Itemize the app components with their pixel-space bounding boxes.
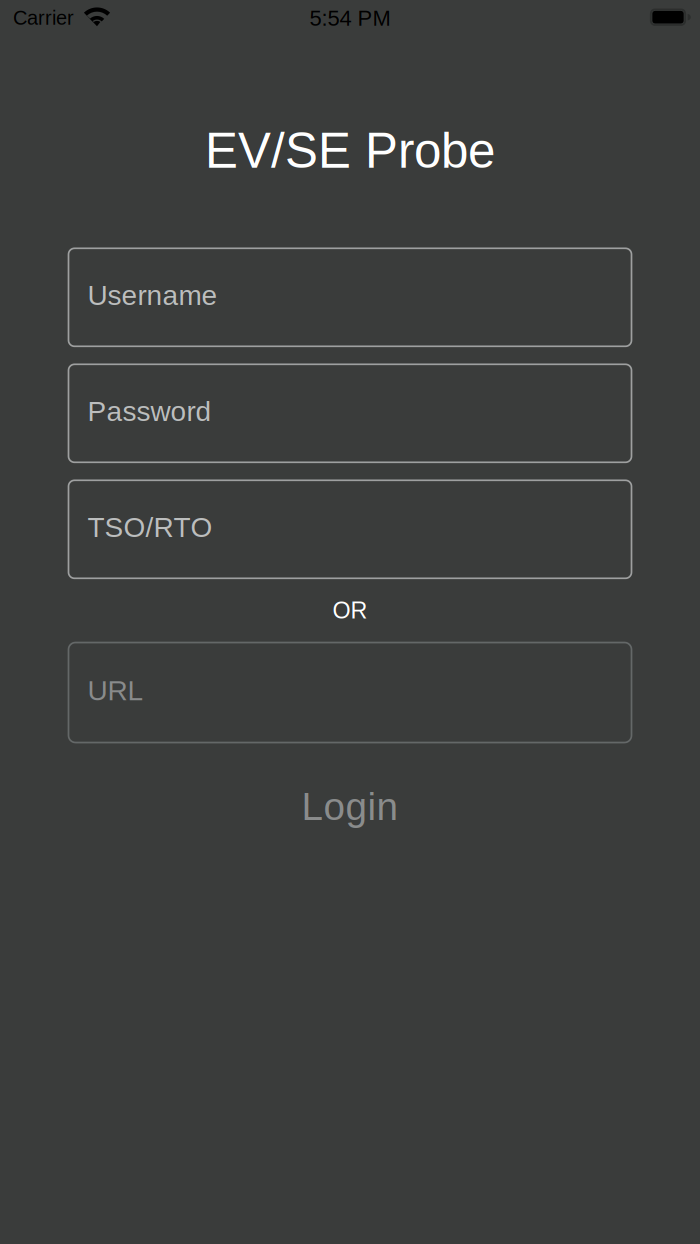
staticText: TSO/RTO [87,512,212,543]
staticText: Password [87,396,211,427]
button[interactable]: TSO/RTO [68,480,631,578]
staticText: EV/SE Probe [205,123,495,178]
staticText: Username [87,280,217,311]
button[interactable]: URL [68,642,631,742]
staticText: 5:54 PM [309,6,390,30]
staticText: Login [301,785,398,828]
button[interactable]: Username [68,248,631,346]
staticText: URL [87,675,143,706]
button[interactable]: Password [68,364,631,462]
button[interactable]: Login [68,780,631,832]
staticText: Carrier [13,7,74,29]
staticText: OR [332,597,367,623]
